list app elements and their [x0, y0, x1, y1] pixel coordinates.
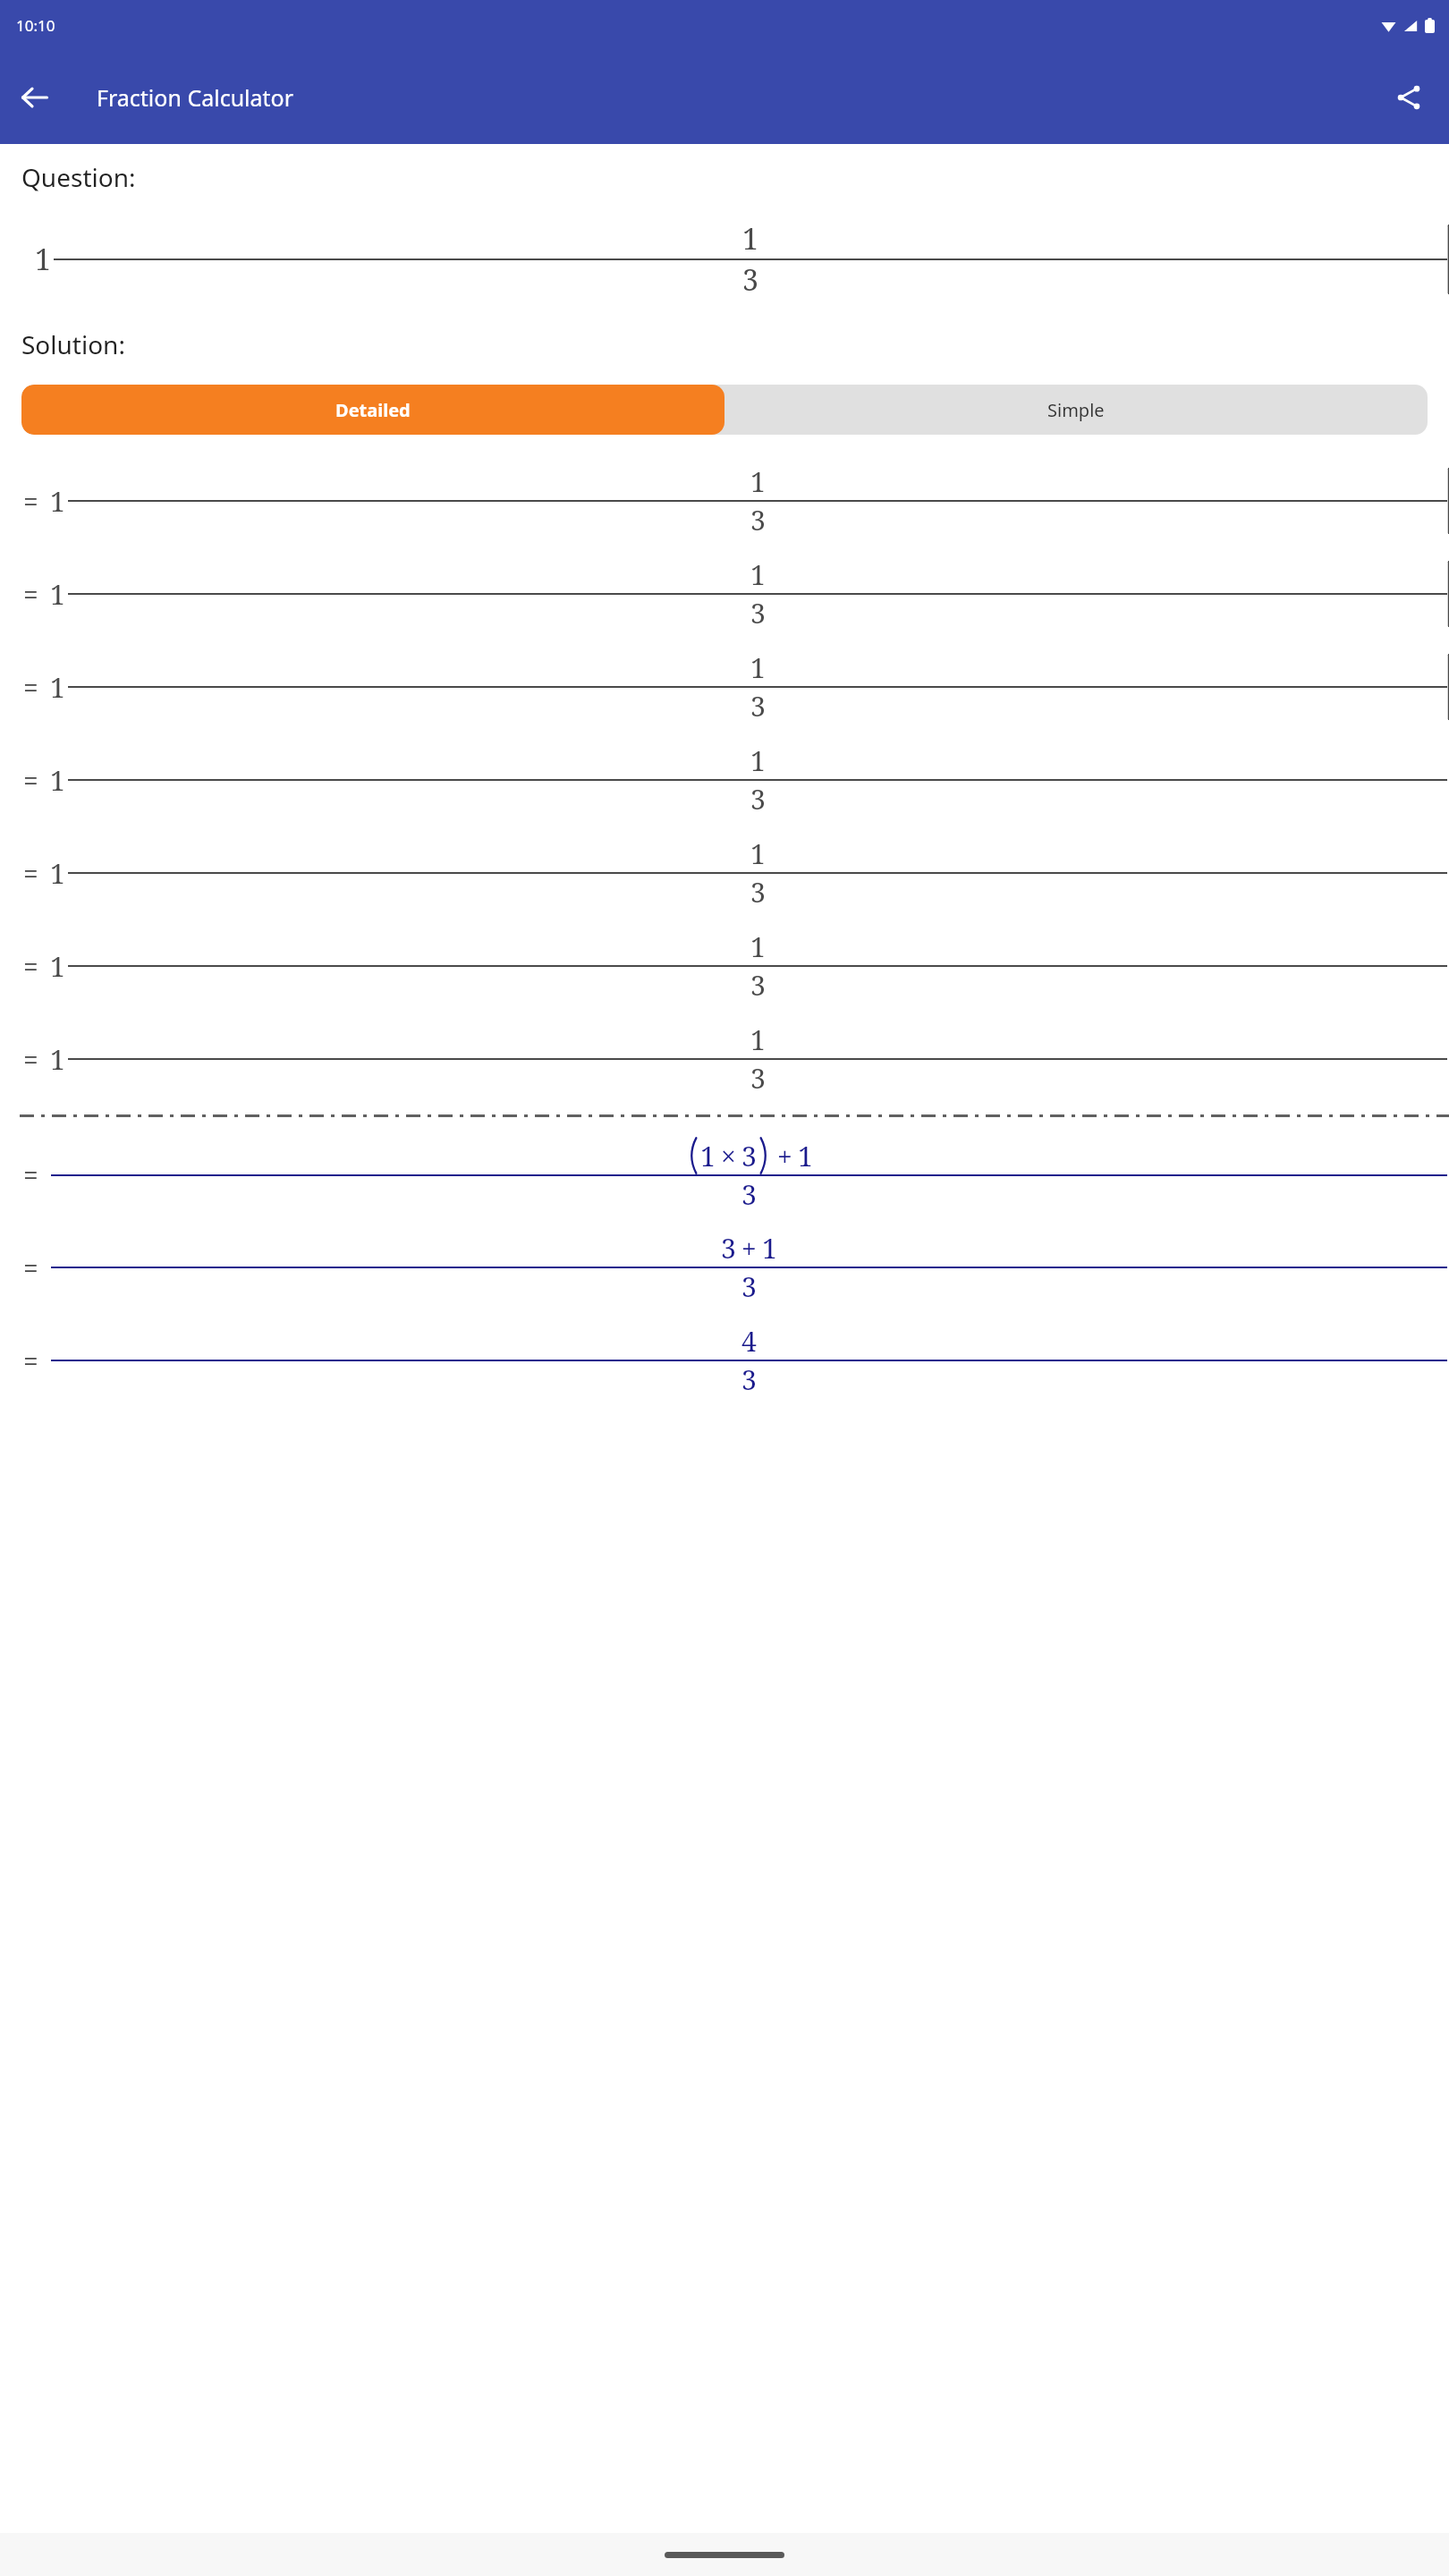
staticText: × — [721, 1138, 736, 1174]
button[interactable]: Share — [1381, 70, 1436, 125]
staticText: + — [741, 1230, 757, 1267]
staticText: 1 — [750, 463, 766, 500]
staticText: 1 — [50, 576, 65, 613]
staticText: 1 — [750, 928, 766, 965]
staticText: 3 — [750, 595, 766, 631]
staticText: 3 — [750, 502, 766, 538]
staticText: 1 — [742, 219, 758, 258]
staticText: = — [23, 762, 38, 799]
staticText: 1 — [50, 669, 65, 706]
staticText: 3 — [750, 688, 766, 724]
staticText: 4 — [741, 1323, 757, 1360]
staticText: 10:10 — [16, 15, 55, 36]
staticText: Question: — [21, 160, 136, 194]
staticText: 1 — [700, 1138, 716, 1174]
staticText: = — [23, 1250, 38, 1286]
staticText: 1 — [35, 240, 51, 279]
staticText: + — [777, 1138, 792, 1174]
staticText: 1 — [750, 649, 766, 686]
staticText: 1 — [50, 855, 65, 892]
staticText: 1 — [50, 948, 65, 985]
staticText: = — [23, 483, 38, 520]
staticText: 1 — [50, 483, 65, 520]
staticText: = — [23, 576, 38, 613]
staticText: = — [23, 948, 38, 985]
staticText: 3 — [741, 1138, 757, 1174]
staticText: Simple — [1047, 398, 1105, 422]
staticText: 1 — [50, 762, 65, 799]
staticText: 3 — [750, 781, 766, 818]
staticText: = — [23, 1157, 38, 1193]
staticText: Solution: — [21, 327, 125, 361]
button[interactable]: Simple — [724, 385, 1428, 435]
staticText: = — [23, 855, 38, 892]
staticText: 3 — [721, 1230, 736, 1267]
staticText: 3 — [741, 1268, 757, 1305]
staticText: 1 — [750, 742, 766, 779]
staticText: = — [23, 1041, 38, 1078]
staticText: 3 — [741, 1176, 757, 1213]
staticText: 3 — [750, 967, 766, 1004]
staticText: 3 — [750, 1060, 766, 1097]
staticText: = — [23, 669, 38, 706]
button[interactable]: Back — [7, 70, 63, 125]
button[interactable]: Detailed — [21, 385, 724, 435]
staticText: 1 — [750, 556, 766, 593]
staticText: 3 — [742, 260, 758, 300]
staticText: 1 — [750, 1021, 766, 1058]
staticText: 1 — [50, 1041, 65, 1078]
staticText: 1 — [762, 1230, 777, 1267]
staticText: Fraction Calculator — [97, 82, 294, 113]
staticText: 1 — [798, 1138, 813, 1174]
staticText: = — [23, 1343, 38, 1379]
staticText: 1 — [750, 835, 766, 872]
staticText: 3 — [750, 874, 766, 911]
staticText: Detailed — [335, 398, 411, 422]
staticText: 3 — [741, 1361, 757, 1398]
